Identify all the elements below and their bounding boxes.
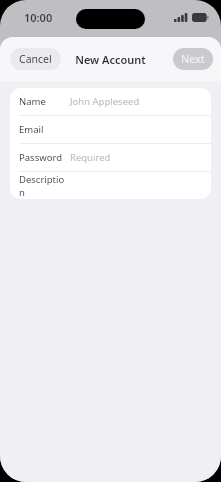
staticText: John Appleseed <box>70 95 140 108</box>
staticText: Required <box>70 151 111 164</box>
staticText: Next <box>181 52 205 66</box>
button[interactable]: Email <box>10 116 211 144</box>
button[interactable]: Password <box>10 144 211 172</box>
staticText: Cancel <box>19 52 52 66</box>
staticText: Description <box>19 173 70 199</box>
staticText: Name <box>19 95 46 108</box>
staticText: New Account <box>75 52 146 67</box>
staticText: 10:00 <box>24 10 53 25</box>
button[interactable]: Cancel <box>10 48 61 70</box>
button[interactable]: Next <box>173 48 213 70</box>
button[interactable]: Description <box>10 172 211 199</box>
button[interactable]: Name <box>10 88 211 116</box>
staticText: Email <box>19 123 44 136</box>
staticText: Password <box>19 151 62 164</box>
